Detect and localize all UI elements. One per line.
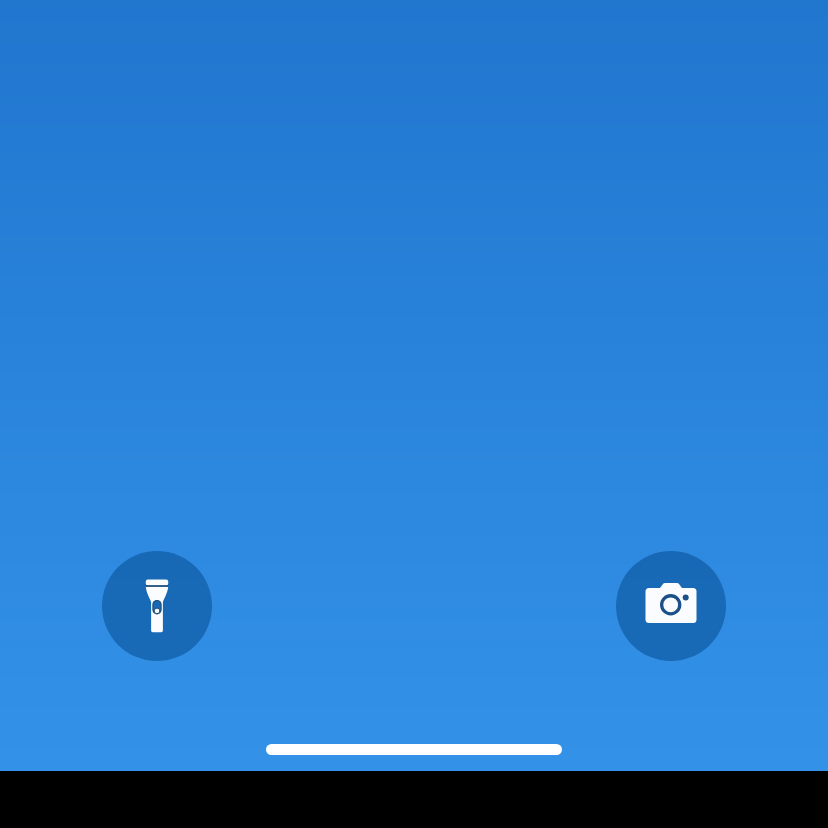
button[interactable]: Camera — [616, 551, 726, 661]
button[interactable]: Home — [266, 744, 562, 755]
button[interactable]: Flashlight — [102, 551, 212, 661]
